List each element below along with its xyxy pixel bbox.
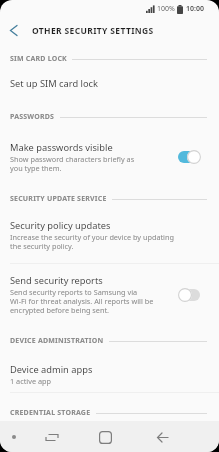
staticText: PASSWORDS <box>10 112 55 122</box>
staticText: Show password characters briefly as you … <box>10 154 135 173</box>
staticText: 10:00 <box>186 4 204 14</box>
button[interactable]: Security policy updates <box>0 219 219 251</box>
button[interactable] <box>38 423 66 451</box>
staticText: Make passwords visible <box>10 141 113 154</box>
staticText: Set up SIM card lock <box>10 77 99 90</box>
button[interactable] <box>0 17 27 44</box>
staticText: DEVICE ADMINISTRATION <box>10 336 104 346</box>
staticText: Security policy updates <box>10 219 111 232</box>
button[interactable] <box>148 423 176 451</box>
button[interactable]: Set up SIM card lock <box>0 77 219 90</box>
button[interactable]: Device admin apps <box>0 363 219 386</box>
staticText: Increase the security of your device by … <box>10 232 174 251</box>
staticText: Send security reports <box>10 274 103 287</box>
staticText: SIM CARD LOCK <box>10 54 67 64</box>
staticText: 1 active app <box>10 376 51 386</box>
button[interactable] <box>91 423 119 451</box>
staticText: 100% <box>157 4 175 14</box>
staticText: Device admin apps <box>10 363 93 376</box>
staticText: CREDENTIAL STORAGE <box>10 408 91 418</box>
button[interactable]: Send security reports <box>0 274 219 315</box>
button[interactable]: Make passwords visible <box>0 141 219 173</box>
staticText: OTHER SECURITY SETTINGS <box>32 25 154 37</box>
staticText: Send security reports to Samsung via Wi-… <box>10 287 154 315</box>
staticText: SECURITY UPDATE SERVICE <box>10 194 107 204</box>
